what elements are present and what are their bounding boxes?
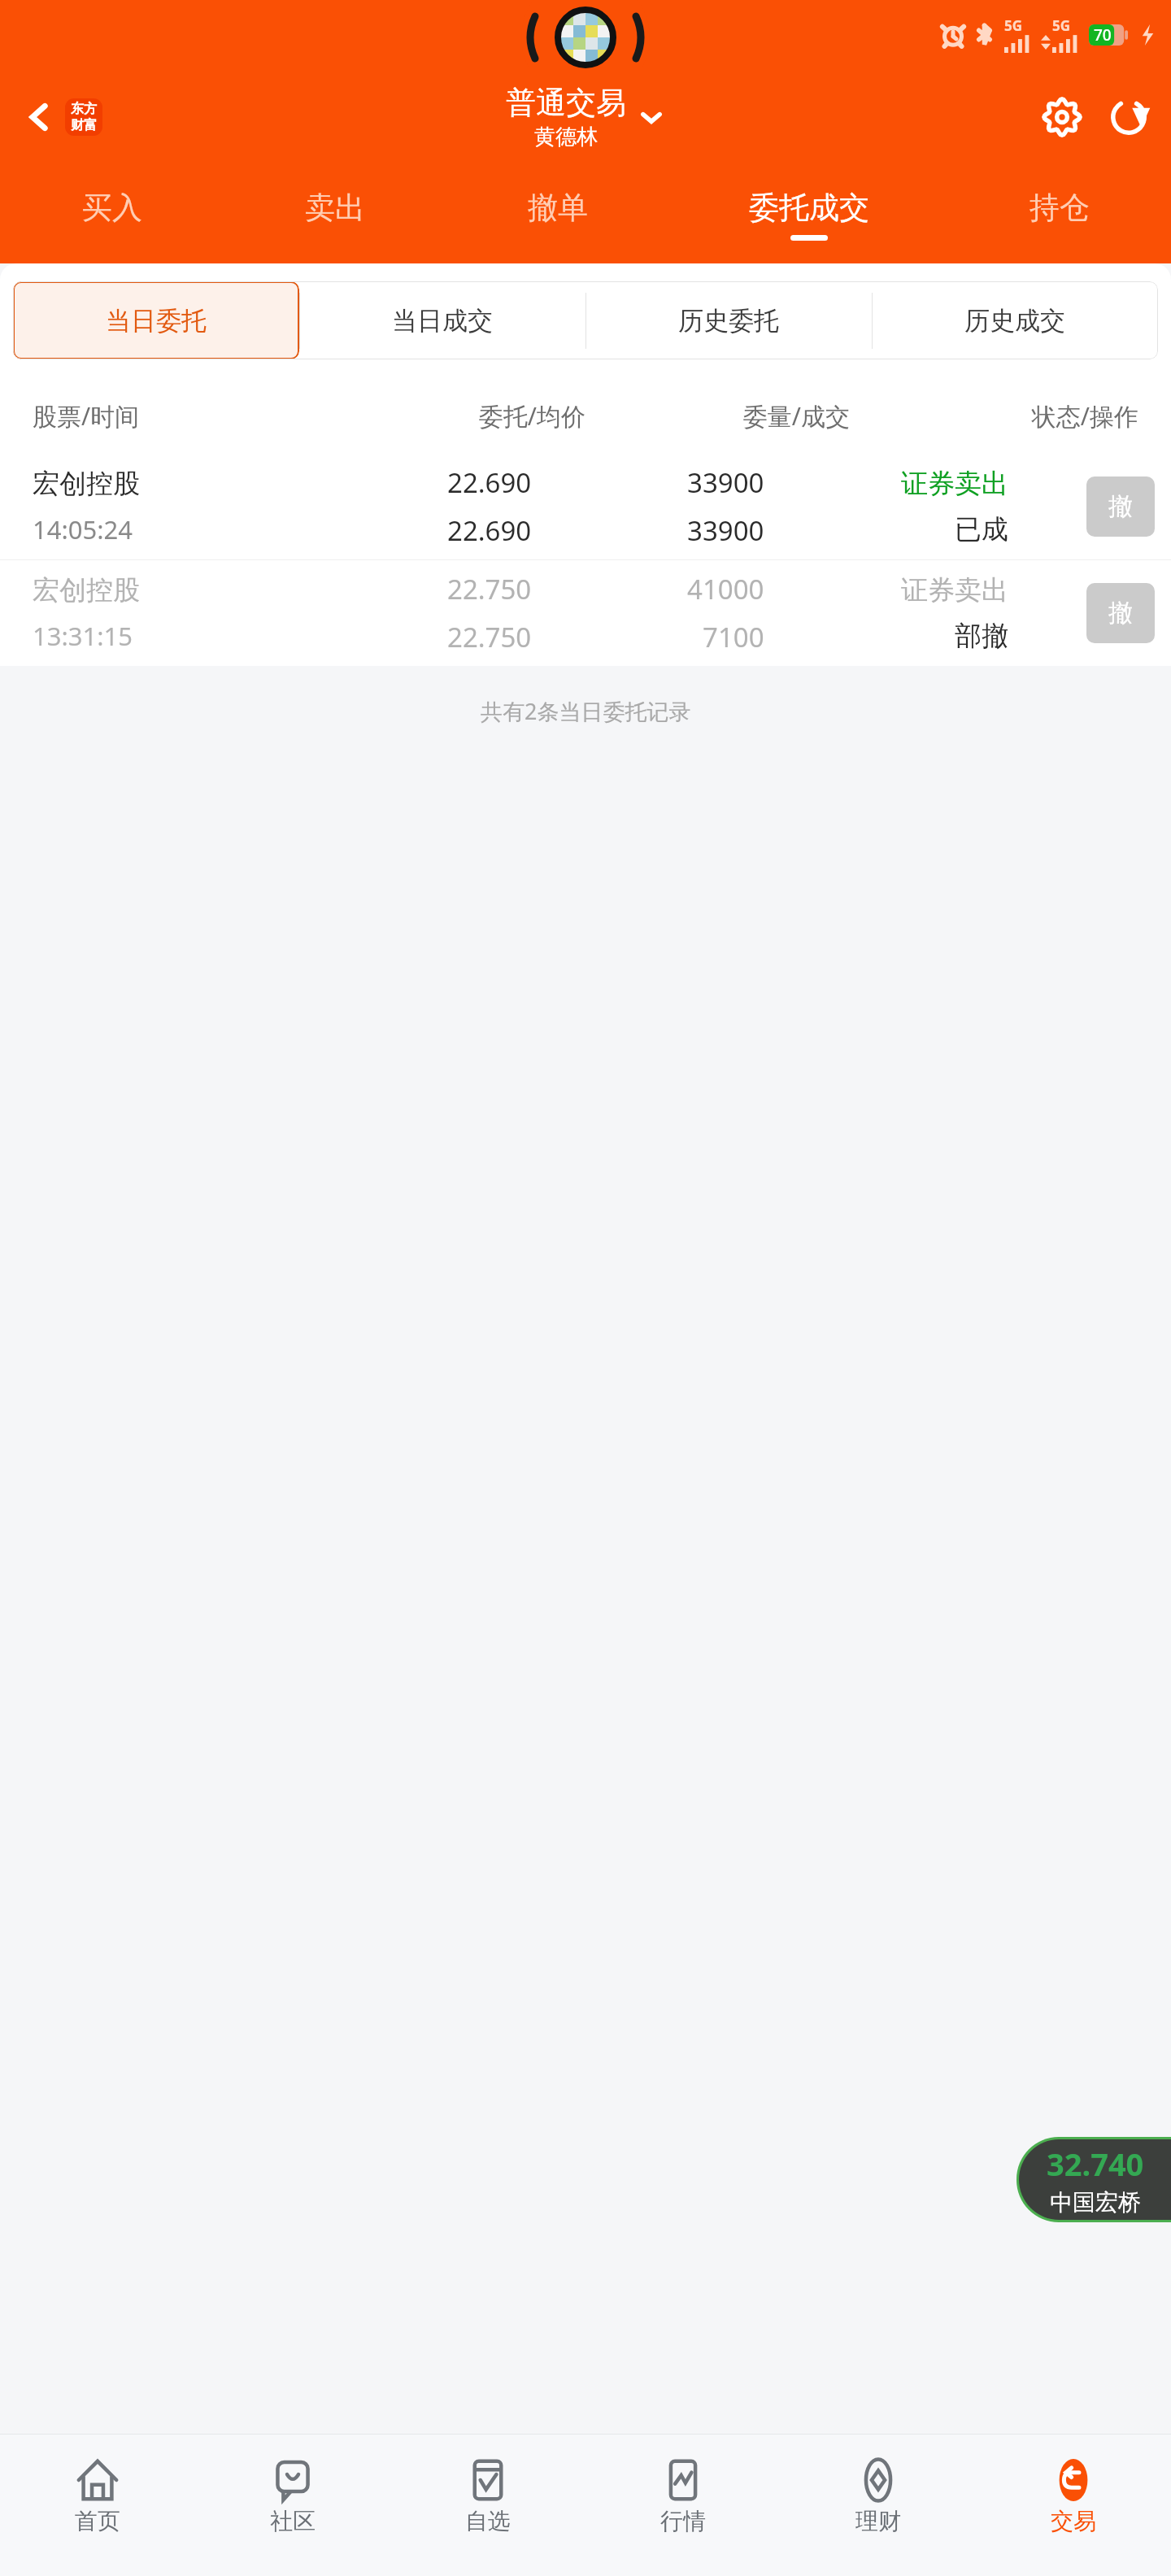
staticText: 持仓 <box>1030 189 1090 227</box>
staticText: 部撤 <box>955 619 1008 653</box>
staticText: 41000 <box>687 571 764 607</box>
staticText: 委托成交 <box>749 189 869 227</box>
button[interactable]: 撤单 <box>446 166 669 263</box>
staticText: 委托/均价 <box>321 399 585 433</box>
staticText: 22.690 <box>447 512 532 549</box>
staticText: 买入 <box>82 189 142 227</box>
button[interactable]: Back <box>16 92 109 142</box>
staticText: 14:05:24 <box>33 512 133 546</box>
button[interactable]: 当日成交 <box>299 281 585 359</box>
staticText: 东方 <box>71 101 97 117</box>
staticText: 33900 <box>687 512 764 549</box>
staticText: 财富 <box>71 117 97 133</box>
button[interactable]: 委托成交 <box>669 166 948 263</box>
button[interactable]: 交易 <box>976 2435 1171 2556</box>
staticText: 22.750 <box>447 619 532 655</box>
staticText: 证券卖出 <box>901 467 1008 501</box>
button[interactable]: Settings <box>1038 93 1086 141</box>
button[interactable]: 历史委托 <box>585 281 872 359</box>
staticText: 共有2条当日委托记录 <box>481 696 691 726</box>
staticText: 历史成交 <box>964 305 1065 337</box>
button[interactable]: Refresh <box>1104 93 1153 141</box>
button[interactable]: 撤 <box>1086 476 1155 537</box>
staticText: 7100 <box>703 619 764 655</box>
staticText: 33900 <box>687 464 764 501</box>
staticText: 交易 <box>1051 2507 1096 2535</box>
button[interactable]: 自选 <box>390 2435 585 2556</box>
staticText: 当日委托 <box>106 305 207 337</box>
staticText: 22.690 <box>447 464 532 501</box>
staticText: 委量/成交 <box>585 399 850 433</box>
staticText: 股票/时间 <box>33 399 321 433</box>
button[interactable]: 普通交易 <box>506 84 665 150</box>
button[interactable]: 持仓 <box>948 166 1171 263</box>
button[interactable]: 32.740 <box>1019 2139 1171 2220</box>
staticText: 当日成交 <box>392 305 493 337</box>
staticText: 13:31:15 <box>33 619 133 653</box>
staticText: 撤单 <box>528 189 588 227</box>
staticText: 历史委托 <box>678 305 779 337</box>
button[interactable]: 行情 <box>585 2435 781 2556</box>
button[interactable]: 卖出 <box>224 166 446 263</box>
button[interactable]: 宏创控股 <box>0 560 1171 666</box>
staticText: 宏创控股 <box>33 467 140 501</box>
button[interactable]: 理财 <box>781 2435 976 2556</box>
staticText: 证券卖出 <box>901 573 1008 607</box>
button[interactable]: 宏创控股 <box>0 454 1171 559</box>
staticText: 32.740 <box>1047 2143 1144 2185</box>
staticText: 宏创控股 <box>33 573 140 607</box>
staticText: 撤 <box>1108 598 1133 629</box>
staticText: 中国宏桥 <box>1050 2188 1141 2217</box>
button[interactable]: 历史成交 <box>872 281 1158 359</box>
button[interactable]: 买入 <box>0 166 224 263</box>
staticText: 5G <box>1052 16 1071 35</box>
staticText: 首页 <box>75 2507 120 2535</box>
staticText: 行情 <box>660 2507 706 2535</box>
button[interactable]: 首页 <box>0 2435 195 2556</box>
staticText: 社区 <box>270 2507 316 2535</box>
staticText: 5G <box>1004 16 1023 35</box>
other: Back <box>23 101 55 133</box>
button[interactable]: 当日委托 <box>13 281 299 359</box>
staticText: 理财 <box>855 2507 901 2535</box>
button[interactable]: 社区 <box>195 2435 390 2556</box>
staticText: 70 <box>1094 24 1112 46</box>
staticText: 22.750 <box>447 571 532 607</box>
staticText: 状态/操作 <box>850 399 1138 433</box>
staticText: 卖出 <box>305 189 365 227</box>
staticText: 黄德林 <box>534 124 598 150</box>
staticText: 自选 <box>465 2507 511 2535</box>
staticText: 撤 <box>1108 491 1133 522</box>
staticText: 已成 <box>955 512 1008 546</box>
staticText: 普通交易 <box>506 84 626 122</box>
button[interactable]: 撤 <box>1086 583 1155 643</box>
